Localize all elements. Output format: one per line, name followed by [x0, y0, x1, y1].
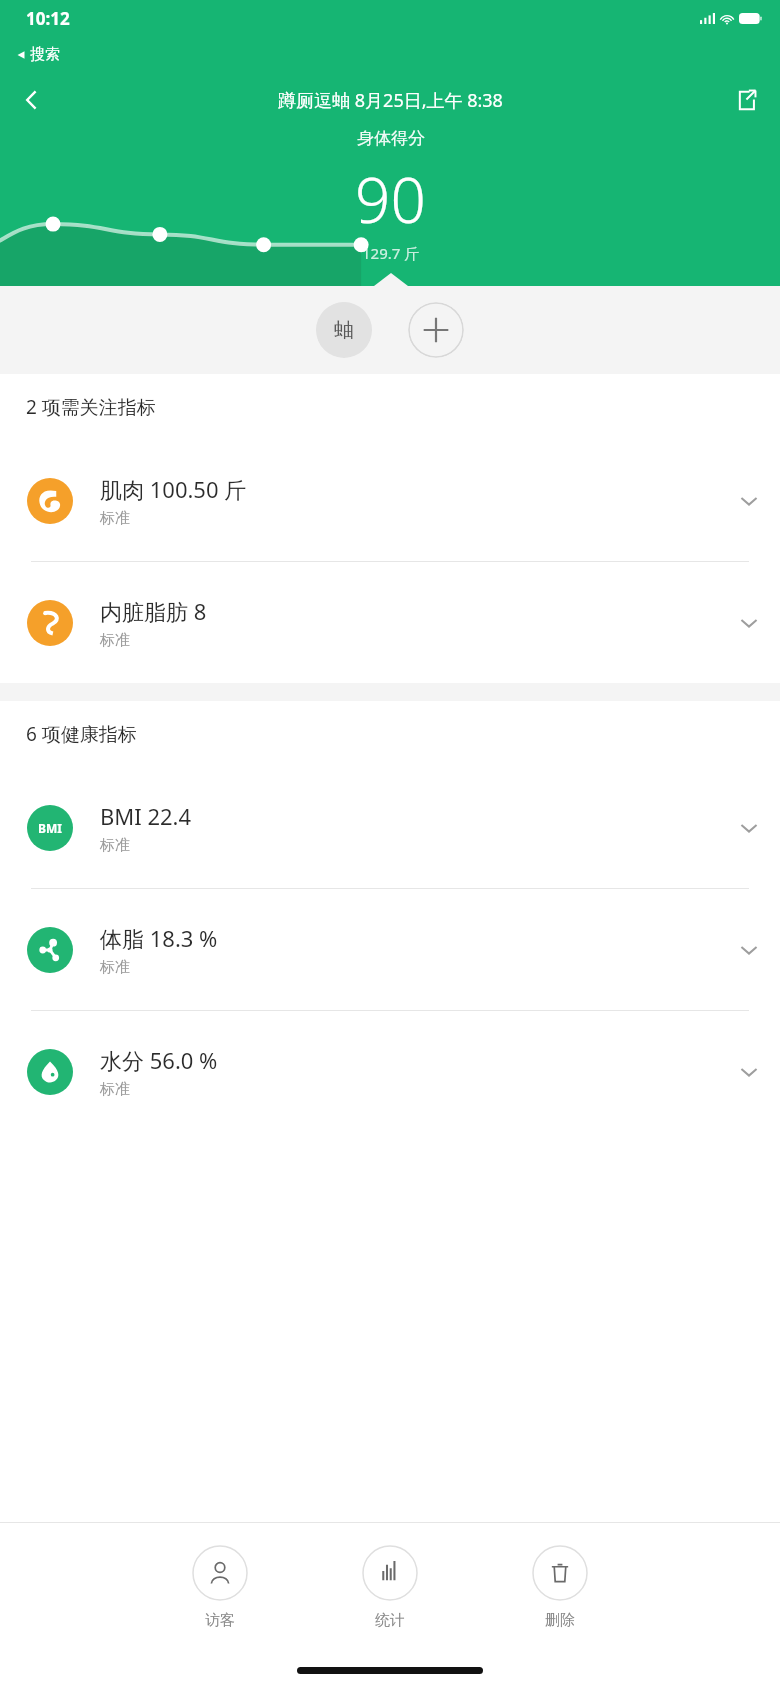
staticText: 标准 — [100, 836, 130, 855]
staticText: 肌肉 100.50 斤 — [100, 474, 247, 504]
button[interactable]: 蚰 — [316, 302, 372, 358]
staticText: 90 — [355, 157, 426, 241]
staticText: 标准 — [100, 1080, 130, 1099]
button[interactable]: 访客 — [184, 1541, 256, 1634]
button[interactable]: BMI — [0, 767, 780, 888]
staticText: 蚰 — [334, 318, 354, 343]
button[interactable]: Add user — [408, 302, 464, 358]
button[interactable]: 内脏脂肪 8 — [0, 562, 780, 683]
button[interactable]: 搜索 — [16, 45, 60, 64]
staticText: 访客 — [205, 1611, 235, 1630]
staticText: BMI — [38, 820, 62, 836]
staticText: 10:12 — [26, 7, 70, 30]
staticText: 标准 — [100, 509, 130, 528]
staticText: 身体得分 — [357, 128, 425, 149]
button[interactable]: 肌肉 100.50 斤 — [0, 440, 780, 561]
staticText: 删除 — [545, 1611, 575, 1630]
staticText: 内脏脂肪 8 — [100, 596, 207, 626]
staticText: 标准 — [100, 631, 130, 650]
button[interactable]: Share — [722, 76, 770, 124]
staticText: 6 项健康指标 — [26, 721, 137, 747]
staticText: 129.7 斤 — [362, 243, 420, 263]
staticText: 标准 — [100, 958, 130, 977]
staticText: 统计 — [375, 1611, 405, 1630]
staticText: 蹲厕逗蚰 8月25日,上午 8:38 — [278, 88, 503, 113]
button[interactable]: Back — [8, 76, 56, 124]
staticText: 体脂 18.3 % — [100, 923, 218, 953]
button[interactable]: 水分 56.0 % — [0, 1011, 780, 1132]
button[interactable]: 体脂 18.3 % — [0, 889, 780, 1010]
staticText: 2 项需关注指标 — [26, 394, 156, 420]
staticText: 搜索 — [30, 45, 60, 64]
staticText: BMI 22.4 — [100, 801, 192, 831]
staticText: 水分 56.0 % — [100, 1045, 218, 1075]
button[interactable]: 统计 — [354, 1541, 426, 1634]
button[interactable]: 删除 — [524, 1541, 596, 1634]
